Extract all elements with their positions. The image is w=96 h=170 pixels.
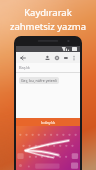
- staticText: Kaydırarak: [4, 6, 92, 19]
- button[interactable]: [16, 137, 80, 148]
- staticText: kolaylık: [41, 120, 56, 125]
- button[interactable]: Add person: [43, 53, 52, 62]
- button[interactable]: [16, 148, 80, 159]
- button[interactable]: kolaylık: [16, 118, 80, 126]
- button[interactable]: Geç, bu, nüfre yetenli: [21, 78, 57, 83]
- staticText: Geç, bu, nüfre yetenli: [21, 78, 57, 83]
- button[interactable]: Emoji: [52, 53, 61, 62]
- button[interactable]: [16, 126, 80, 137]
- staticText: Başlık: [19, 65, 30, 70]
- button[interactable]: Camera: [61, 53, 70, 62]
- staticText: zahmetsiz yazma: [4, 20, 92, 33]
- button[interactable]: [16, 159, 80, 170]
- button[interactable]: More options: [70, 54, 78, 62]
- button[interactable]: Back: [18, 53, 27, 62]
